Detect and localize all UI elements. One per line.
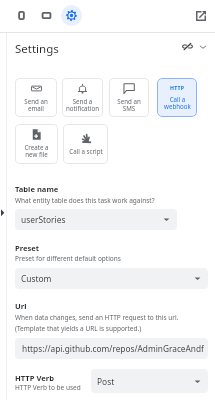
staticText: Call a webhook bbox=[164, 95, 191, 111]
staticText: Post bbox=[97, 376, 115, 387]
button[interactable]: Send a notification bbox=[62, 78, 103, 117]
staticText: When data changes, send an HTTP request … bbox=[15, 313, 179, 322]
button[interactable]: userStories bbox=[15, 209, 177, 230]
staticText: Preset for different default options bbox=[15, 254, 121, 263]
button[interactable]: Call a script bbox=[63, 124, 108, 164]
staticText: Send an email bbox=[24, 97, 48, 113]
button[interactable]: Post bbox=[91, 369, 208, 393]
button[interactable]: Open in new bbox=[190, 5, 211, 26]
staticText: Call a script bbox=[69, 147, 103, 155]
button[interactable]: Send an SMS bbox=[109, 78, 149, 117]
button[interactable]: Custom bbox=[15, 268, 208, 289]
button[interactable]: Phone preview bbox=[11, 5, 32, 26]
staticText: HTTP bbox=[170, 84, 185, 91]
staticText: userStories bbox=[21, 214, 66, 225]
button[interactable]: Create a new file bbox=[15, 124, 58, 164]
staticText: Url bbox=[15, 301, 27, 311]
button[interactable]: HTTP bbox=[157, 78, 197, 117]
staticText: Send an SMS bbox=[117, 97, 141, 113]
staticText: (Template that yields a URL is supported… bbox=[15, 324, 142, 333]
button[interactable]: Tablet preview bbox=[36, 5, 57, 26]
button[interactable]: Send an email bbox=[15, 78, 57, 117]
staticText: Custom bbox=[21, 273, 52, 284]
staticText: Table name bbox=[15, 184, 59, 194]
button[interactable]: https://api.github.com/repos/AdminGraceA… bbox=[15, 338, 208, 359]
button[interactable]: Unlink bbox=[178, 40, 211, 53]
staticText: Preset bbox=[15, 243, 40, 253]
staticText: https://api.github.com/repos/AdminGraceA… bbox=[22, 343, 204, 354]
staticText: HTTP Verb to be used bbox=[15, 383, 81, 392]
other: Unlink bbox=[182, 41, 193, 52]
staticText: HTTP Verb bbox=[15, 373, 54, 383]
button[interactable]: Settings bbox=[61, 5, 82, 26]
staticText: Create a new file bbox=[24, 143, 49, 159]
staticText: What entity table does this task work ag… bbox=[15, 196, 155, 205]
staticText: Send a notification bbox=[66, 97, 99, 113]
staticText: Settings bbox=[15, 41, 59, 57]
